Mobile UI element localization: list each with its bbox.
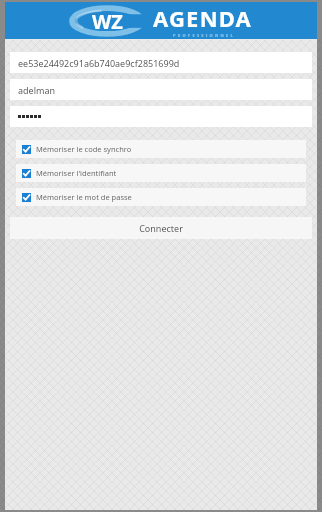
button[interactable]: ee53e24492c91a6b740ae9cf2851699d bbox=[10, 52, 312, 73]
button[interactable]: Connecter bbox=[10, 217, 312, 239]
button[interactable]: Mémoriser l'identifiant bbox=[16, 164, 306, 182]
staticText: Mémoriser le mot de passe bbox=[36, 192, 132, 202]
staticText: Mémoriser l'identifiant bbox=[36, 168, 117, 178]
staticText: WZ bbox=[92, 8, 123, 35]
staticText: adelman bbox=[18, 84, 56, 96]
button[interactable]: Mémoriser le code synchro bbox=[16, 140, 306, 158]
staticText: P R O F E S S I O N N E L bbox=[173, 33, 234, 38]
staticText: Mémoriser le code synchro bbox=[36, 144, 132, 154]
button[interactable]: Mémoriser le mot de passe bbox=[16, 188, 306, 206]
button[interactable] bbox=[10, 106, 312, 127]
staticText: AGENDA bbox=[153, 3, 253, 33]
button[interactable]: adelman bbox=[10, 79, 312, 100]
staticText: Connecter bbox=[139, 222, 183, 234]
staticText: ee53e24492c91a6b740ae9cf2851699d bbox=[18, 57, 180, 69]
